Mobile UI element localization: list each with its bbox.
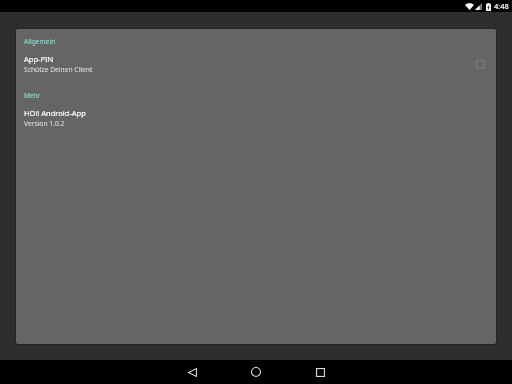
button[interactable]: App-PIN bbox=[16, 48, 496, 78]
button[interactable]: Recent apps bbox=[288, 360, 352, 384]
staticText: Version 1.0.2 bbox=[24, 119, 65, 128]
staticText: Schütze Deinen Client bbox=[24, 65, 93, 74]
button[interactable]: Toggle App-PIN bbox=[471, 55, 489, 73]
other: Mobile signal bbox=[475, 3, 482, 10]
button[interactable]: HOi! Android-App bbox=[16, 102, 496, 132]
button[interactable]: Back bbox=[160, 360, 224, 384]
staticText: HOi! Android-App bbox=[24, 108, 86, 118]
staticText: App-PIN bbox=[24, 54, 54, 64]
staticText: Mehr bbox=[24, 91, 41, 100]
staticText: Allgemein bbox=[24, 37, 56, 46]
button[interactable]: Home bbox=[224, 360, 288, 384]
other: Battery charging bbox=[486, 3, 491, 11]
staticText: 4:48 bbox=[494, 1, 509, 11]
other: Wi-Fi bbox=[465, 3, 474, 10]
